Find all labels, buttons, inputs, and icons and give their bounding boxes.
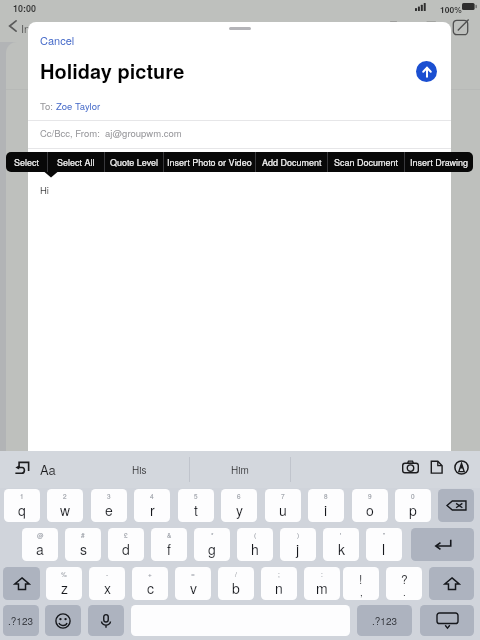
staticText: 9 [368,492,372,501]
button[interactable]: Dictate [88,605,124,636]
staticText: Holiday picture [40,56,185,85]
staticText: Hi [40,183,49,197]
button[interactable]: Markup [454,460,469,475]
button[interactable]: ' [323,528,359,561]
button[interactable]: * [194,528,230,561]
button[interactable]: 9 [352,489,388,522]
staticText: x [104,578,111,598]
button[interactable]: .?123 [3,605,39,636]
staticText: 3 [107,492,111,501]
other: Archive [385,21,402,34]
button[interactable]: Him [219,455,261,484]
staticText: , [360,585,363,599]
button[interactable]: His [118,455,160,484]
button[interactable]: Shift [3,567,40,600]
staticText: Insert Photo or Video [167,156,252,169]
staticText: To: [40,99,56,113]
staticText: 0 [411,492,415,501]
button[interactable]: 4 [134,489,170,522]
button[interactable]: Delete [438,489,474,522]
button[interactable]: Add Document [256,152,327,172]
staticText: 10:00 [13,2,37,15]
staticText: * [211,531,214,540]
staticText: Select All [57,156,95,169]
staticText: w [60,500,71,520]
staticText: u [279,500,287,520]
button[interactable]: ; [261,567,297,600]
button[interactable]: 8 [308,489,344,522]
button[interactable]: @ [22,528,58,561]
staticText: a [36,539,44,559]
staticText: b [232,578,240,598]
button[interactable]: Scan Document [328,152,404,172]
button[interactable]: " [366,528,402,561]
button[interactable]: & [151,528,187,561]
staticText: k [338,539,345,559]
button[interactable]: 3 [91,489,127,522]
staticText: 2 [63,492,67,501]
staticText: 4 [150,492,154,501]
staticText: l [382,539,386,559]
button[interactable]: Return [411,528,474,561]
staticText: j [296,539,300,559]
button[interactable]: / [218,567,254,600]
staticText: n [275,578,283,598]
button[interactable]: 0 [395,489,431,522]
other: Compose [452,19,469,36]
button[interactable]: Aa [40,460,56,479]
staticText: 7 [281,492,285,501]
button[interactable]: ( [237,528,273,561]
button[interactable]: = [175,567,211,600]
button[interactable]: ) [280,528,316,561]
button[interactable]: Cancel [40,32,75,48]
staticText: Him [231,463,249,477]
button[interactable]: Shift [429,567,474,600]
button[interactable]: Attach document [430,459,443,475]
staticText: - [106,570,109,579]
button[interactable]: + [132,567,168,600]
button[interactable]: .?123 [357,605,412,636]
button[interactable]: ! [343,567,379,600]
button[interactable]: Undo [14,460,31,477]
button[interactable]: 6 [221,489,257,522]
staticText: # [81,531,85,540]
button[interactable]: # [65,528,101,561]
staticText: 6 [237,492,241,501]
button[interactable]: Take photo [402,460,419,475]
button[interactable]: Insert Drawing [405,152,473,172]
staticText: Select [14,156,40,169]
button[interactable]: 5 [178,489,214,522]
staticText: " [383,531,386,540]
staticText: g [208,539,216,559]
staticText: 1 [20,492,24,501]
staticText: v [190,578,197,598]
staticText: Quote Level [110,156,158,169]
button[interactable]: 2 [47,489,83,522]
staticText: 8 [324,492,328,501]
button[interactable]: Cc/Bcc, From: aj@groupwm.com [40,126,182,140]
button[interactable]: Insert Photo or Video [164,152,255,172]
button[interactable]: Hide keyboard [420,605,474,636]
staticText: / [235,570,237,579]
staticText: m [316,578,328,598]
staticText: y [236,500,243,520]
staticText: His [132,463,147,477]
button[interactable]: % [46,567,82,600]
button[interactable]: 1 [4,489,40,522]
button[interactable]: Select [6,152,47,172]
button[interactable]: Emoji [45,605,81,636]
staticText: s [80,539,87,559]
button[interactable]: Send [416,61,437,82]
button[interactable]: Quote Level [105,152,163,172]
staticText: £ [124,531,128,540]
button[interactable]: - [89,567,125,600]
button[interactable]: : [304,567,340,600]
staticText: c [147,578,154,598]
button[interactable]: Select All [48,152,104,172]
button[interactable]: £ [108,528,144,561]
button[interactable]: ? [386,567,422,600]
button[interactable]: To: [40,99,101,113]
button[interactable]: 7 [265,489,301,522]
staticText: h [251,539,259,559]
